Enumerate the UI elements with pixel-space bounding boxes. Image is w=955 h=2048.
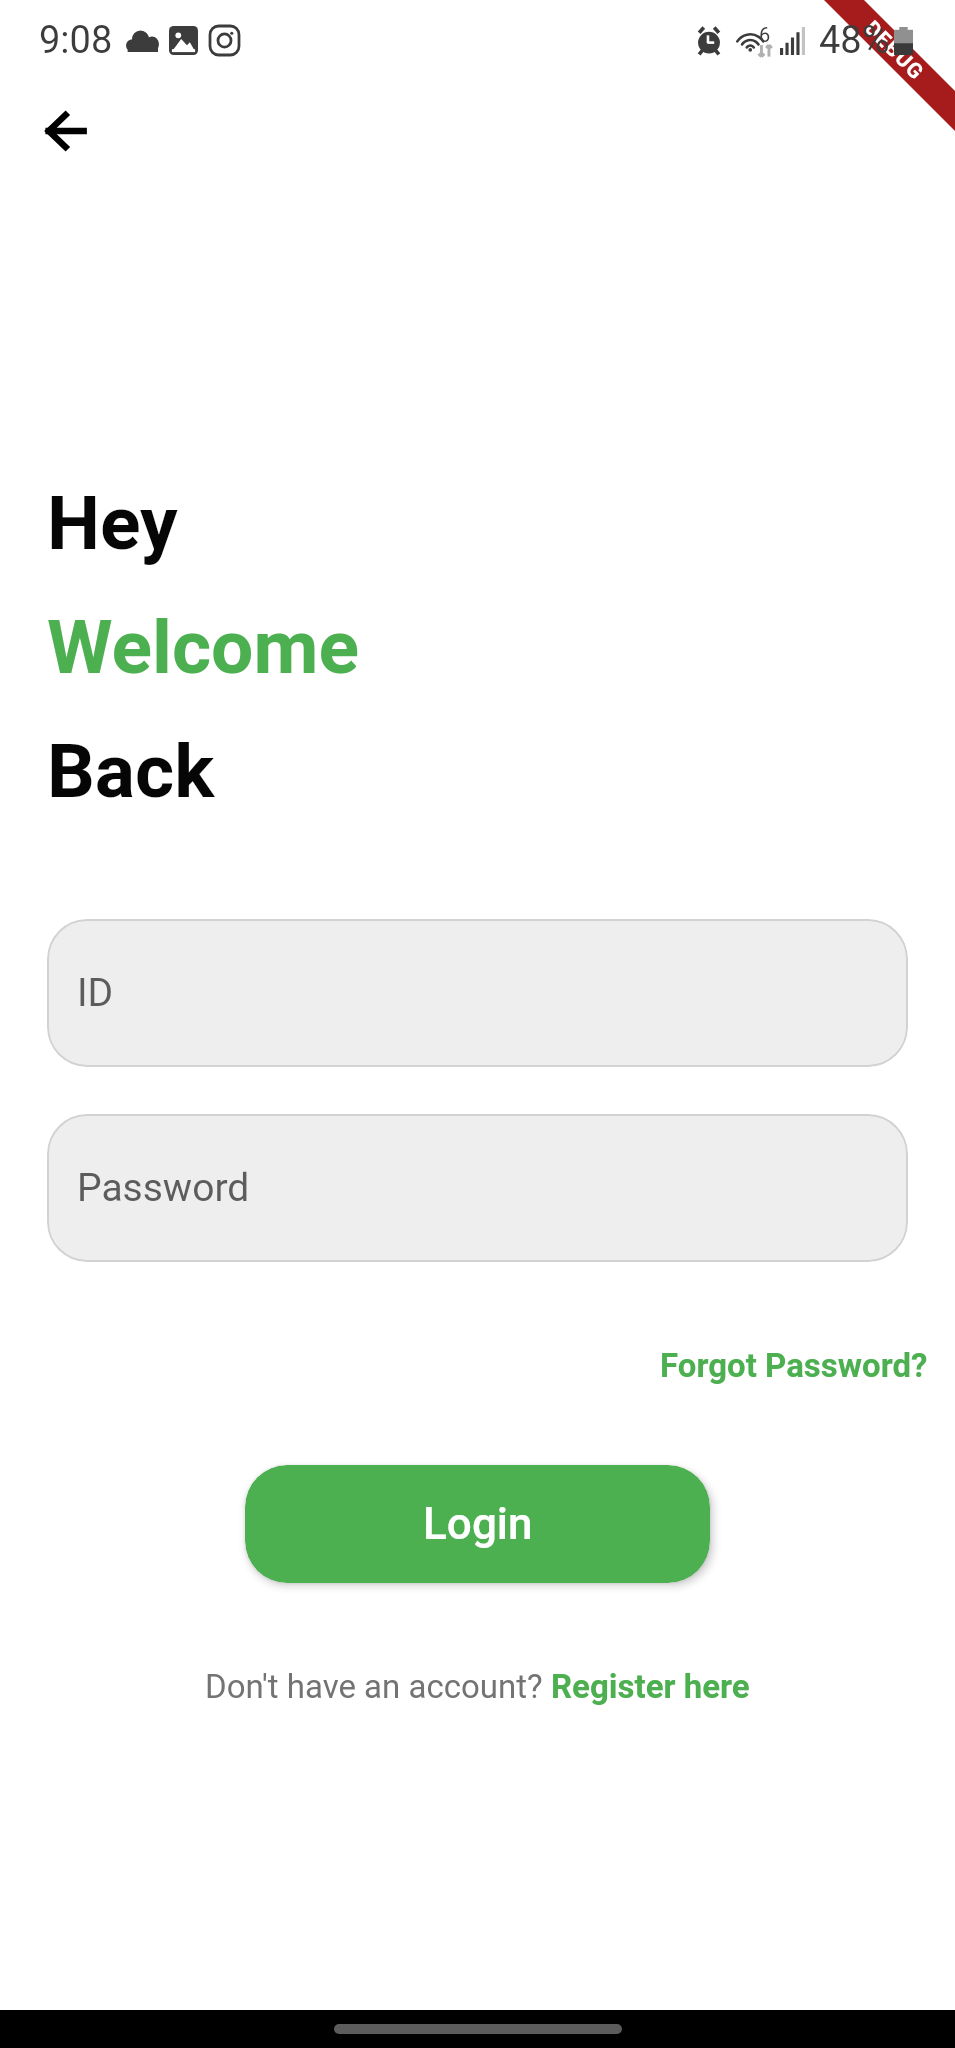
staticText: 9:08 — [39, 18, 113, 63]
staticText: Register here — [551, 1667, 750, 1706]
staticText: 48% — [819, 18, 890, 63]
button[interactable]: Password — [47, 1114, 908, 1262]
button[interactable]: Register here — [551, 1667, 750, 1706]
staticText: Password — [77, 1165, 250, 1211]
staticText: ID — [77, 970, 114, 1016]
staticText: 6 — [759, 23, 771, 46]
staticText: Forgot Password? — [660, 1346, 928, 1385]
button[interactable]: Login — [245, 1465, 710, 1583]
button[interactable]: Forgot Password? — [633, 1334, 955, 1397]
staticText: DEBUG — [859, 16, 929, 85]
button[interactable]: Back — [23, 89, 107, 173]
staticText: Login — [423, 1498, 533, 1550]
button[interactable]: ID — [47, 919, 908, 1067]
staticText: Hey Welcome Back — [47, 451, 359, 823]
staticText: Don't have an account? — [205, 1667, 551, 1706]
